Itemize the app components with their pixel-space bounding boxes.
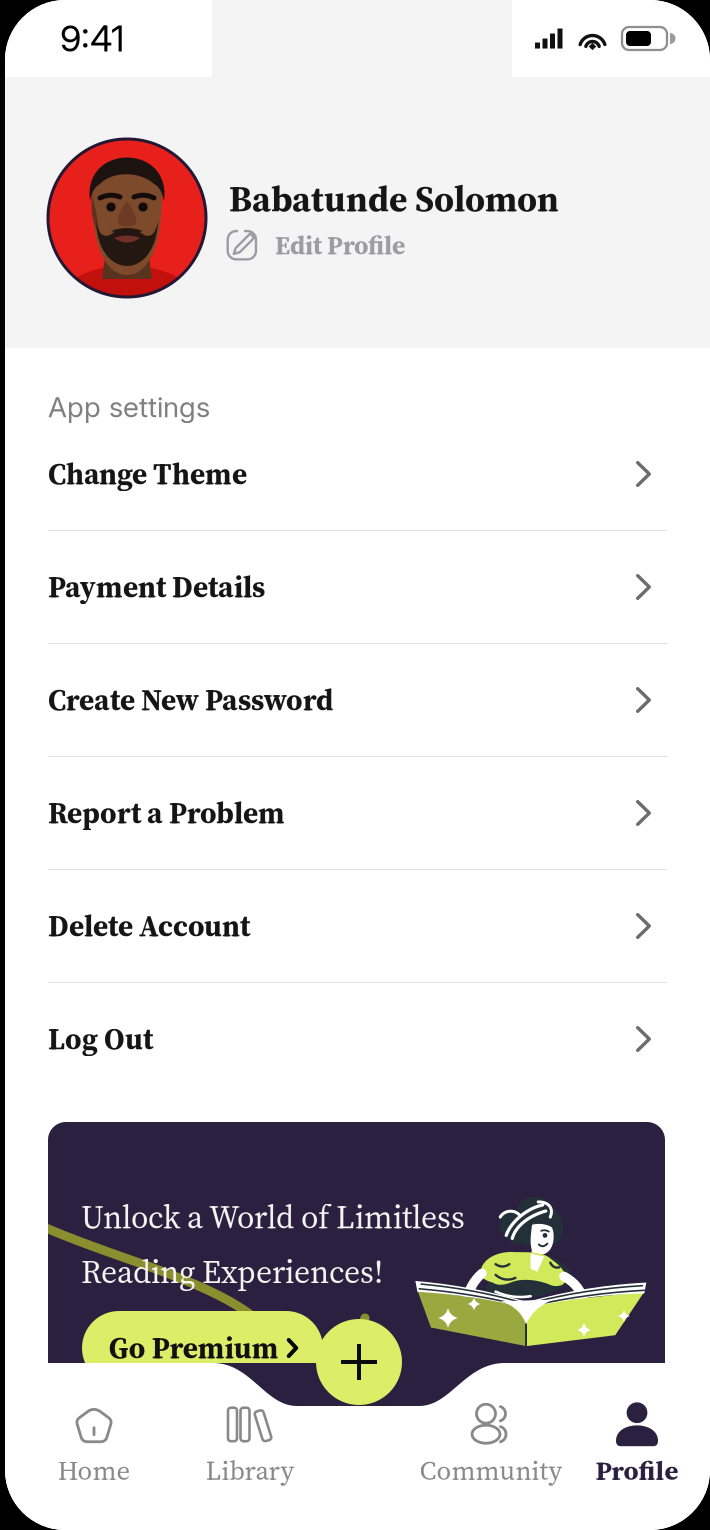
- staticText: App settings: [48, 390, 210, 424]
- staticText: Community: [419, 1452, 562, 1489]
- button[interactable]: Library: [190, 1404, 310, 1490]
- button[interactable]: Go Premium: [82, 1311, 323, 1385]
- button[interactable]: Home: [34, 1404, 154, 1490]
- button[interactable]: Change Theme: [5, 418, 710, 530]
- button[interactable]: Log Out: [5, 983, 710, 1095]
- button[interactable]: Delete Account: [5, 870, 710, 982]
- staticText: Create New Password: [48, 680, 333, 720]
- button[interactable]: Edit Profile: [226, 226, 405, 265]
- staticText: Unlock a World of Limitless: [81, 1195, 465, 1239]
- staticText: Library: [205, 1452, 294, 1489]
- staticText: Edit Profile: [275, 228, 405, 263]
- staticText: Home: [57, 1452, 130, 1489]
- button[interactable]: Create New Password: [5, 644, 710, 756]
- staticText: Log Out: [48, 1019, 153, 1059]
- button[interactable]: Profile: [577, 1404, 697, 1490]
- button[interactable]: Community: [401, 1404, 581, 1490]
- button[interactable]: Add: [316, 1319, 402, 1405]
- staticText: Profile: [595, 1452, 678, 1489]
- staticText: Report a Problem: [48, 793, 285, 833]
- button[interactable]: Payment Details: [5, 531, 710, 643]
- staticText: Babatunde Solomon: [229, 174, 559, 223]
- staticText: Change Theme: [48, 454, 247, 494]
- staticText: Go Premium: [109, 1328, 279, 1368]
- staticText: Reading Experiences!: [81, 1250, 383, 1294]
- staticText: Payment Details: [48, 567, 265, 607]
- staticText: Delete Account: [48, 906, 250, 946]
- button[interactable]: Report a Problem: [5, 757, 710, 869]
- staticText: 9:41: [60, 17, 124, 60]
